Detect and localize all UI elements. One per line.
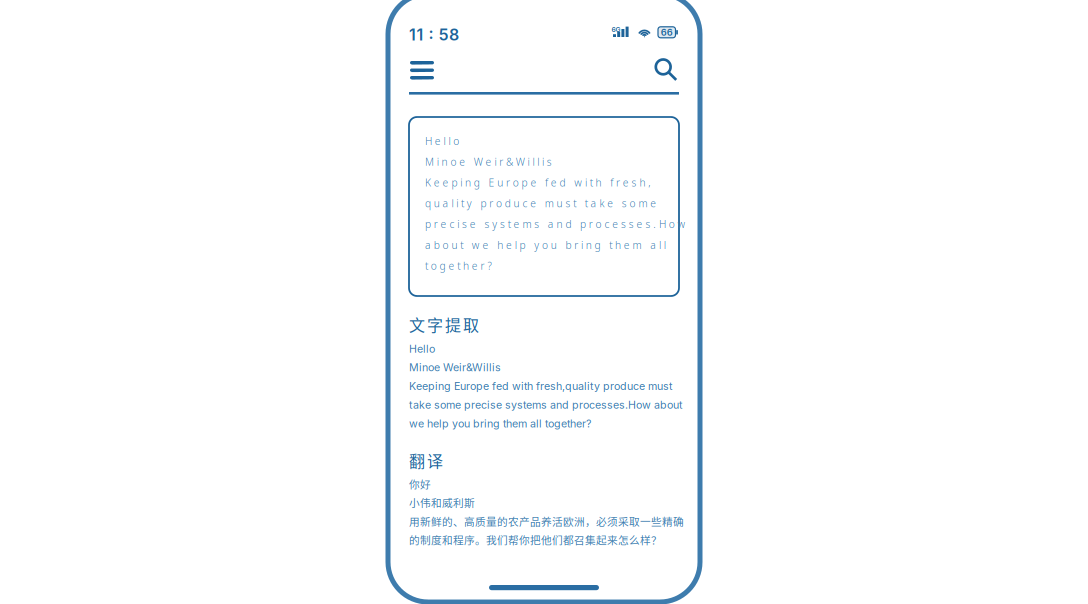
staticText: 66 bbox=[661, 27, 673, 38]
button[interactable]: Search bbox=[0, 0, 1088, 604]
staticText: 6G bbox=[611, 25, 620, 34]
staticText: 11 : 58 bbox=[409, 25, 459, 44]
staticText: 文字提取 bbox=[409, 313, 479, 336]
button[interactable]: Menu bbox=[0, 0, 1088, 604]
staticText: Hello Minoe Weir&Willis Keeping Europe f… bbox=[425, 134, 686, 273]
staticText: Hello Minoe Weir&Willis Keeping Europe f… bbox=[409, 342, 682, 430]
staticText: 翻译 bbox=[409, 449, 443, 472]
staticText: 你好 小伟和威利斯 用新鲜的、高质量的农产品养活欧洲，必须采取一些精确 的制度和… bbox=[409, 476, 684, 547]
